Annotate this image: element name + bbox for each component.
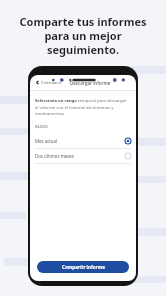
other: Back [35, 80, 40, 85]
staticText: Compartir informe [62, 264, 105, 270]
staticText: Dos últimos meses [35, 153, 125, 159]
staticText: Selecciona un rango temporal para descar… [35, 98, 131, 116]
button[interactable]: Compartir informe [37, 261, 129, 273]
button[interactable]: Mes actual [30, 134, 136, 148]
button[interactable]: Dos últimos meses [30, 149, 136, 163]
staticText: Mes actual [35, 138, 125, 144]
button[interactable]: Back [34, 78, 63, 87]
staticText: Comparte tus informes para un mejor segu… [8, 14, 158, 57]
staticText: RANGO [35, 124, 48, 129]
staticText: Descargar informe [70, 80, 111, 86]
staticText: Calendario [41, 80, 62, 85]
